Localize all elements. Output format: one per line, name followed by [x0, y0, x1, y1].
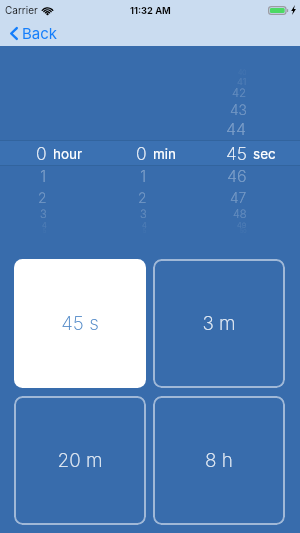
- staticText: Back: [22, 24, 58, 42]
- staticText: hour: [53, 146, 83, 162]
- staticText: 44: [226, 119, 247, 139]
- button[interactable]: 3 m: [153, 259, 285, 388]
- staticText: 45: [226, 143, 247, 164]
- staticText: 43: [230, 101, 247, 118]
- staticText: 4: [42, 221, 47, 230]
- staticText: 3 m: [202, 312, 236, 335]
- button[interactable]: 20 m: [14, 396, 146, 525]
- staticText: 1: [40, 166, 47, 186]
- staticText: 48: [233, 207, 247, 221]
- button[interactable]: 0: [100, 46, 200, 246]
- staticText: 1: [140, 166, 147, 186]
- staticText: min: [153, 146, 177, 162]
- staticText: 45 s: [61, 312, 99, 335]
- staticText: 42: [232, 86, 247, 100]
- staticText: Carrier: [5, 4, 38, 16]
- staticText: 11:32 AM: [130, 5, 171, 16]
- staticText: 3: [40, 207, 47, 221]
- button[interactable]: 8 h: [153, 396, 285, 525]
- staticText: 20 m: [57, 449, 103, 472]
- button[interactable]: Back: [0, 20, 70, 46]
- staticText: 41: [237, 76, 247, 87]
- staticText: 47: [230, 189, 247, 206]
- staticText: 8 h: [205, 449, 233, 472]
- staticText: 0: [36, 143, 47, 164]
- staticText: 0: [136, 143, 147, 164]
- staticText: 49: [237, 221, 247, 230]
- staticText: 3: [140, 207, 147, 221]
- staticText: 46: [227, 166, 247, 186]
- button[interactable]: 45 s: [14, 259, 146, 388]
- button[interactable]: 0: [0, 46, 100, 246]
- staticText: 2: [38, 189, 47, 206]
- staticText: sec: [253, 146, 276, 162]
- staticText: 2: [138, 189, 147, 206]
- staticText: 4: [142, 221, 147, 230]
- button[interactable]: 40: [200, 46, 300, 246]
